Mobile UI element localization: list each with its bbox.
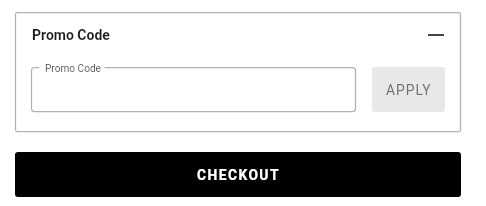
button[interactable]: Promo Code (31, 67, 356, 112)
button[interactable]: Collapse promo code (425, 24, 447, 46)
staticText: CHECKOUT (197, 167, 280, 183)
staticText: Promo Code (32, 27, 110, 43)
button[interactable]: Promo Code (15, 12, 461, 58)
button[interactable]: CHECKOUT (15, 152, 461, 197)
staticText: APPLY (386, 82, 432, 98)
staticText: Promo Code (45, 63, 101, 75)
button[interactable]: APPLY (372, 67, 445, 112)
